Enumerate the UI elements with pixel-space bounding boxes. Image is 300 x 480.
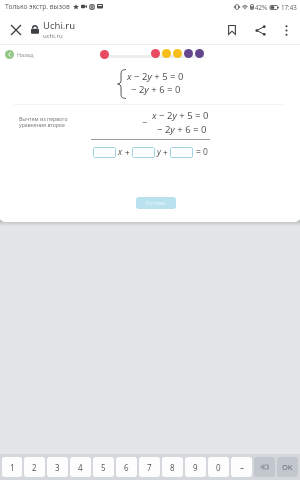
button[interactable]: Готово <box>136 197 176 209</box>
button[interactable]: 1 <box>2 457 22 477</box>
staticText: − 2y + 6 = 0 <box>131 83 181 96</box>
staticText: − 2y + 6 = 0 <box>157 123 207 136</box>
staticText: y <box>157 146 161 158</box>
button[interactable]: Backspace <box>254 457 275 477</box>
staticText: 5 <box>101 462 106 473</box>
staticText: 17:43 <box>281 3 297 11</box>
button[interactable]: 5 <box>93 457 114 477</box>
button[interactable]: Close <box>4 18 28 42</box>
staticText: Готово <box>146 199 166 207</box>
button[interactable]: 0 <box>208 457 229 477</box>
button[interactable]: – <box>231 457 252 477</box>
staticText: Назад <box>17 51 34 58</box>
staticText: Только экстр. вызов <box>5 2 70 11</box>
staticText: 8 <box>170 462 175 473</box>
staticText: 7 <box>147 462 152 473</box>
staticText: 2 <box>32 462 37 473</box>
staticText: 3 <box>55 462 60 473</box>
button[interactable]: Share <box>249 19 271 41</box>
staticText: + <box>125 147 130 158</box>
button[interactable]: 4 <box>70 457 91 477</box>
staticText: 9 <box>193 462 198 473</box>
button[interactable]: 3 <box>47 457 68 477</box>
staticText: Uchi.ru <box>43 19 76 32</box>
staticText: x <box>118 146 123 158</box>
staticText: 1 <box>10 462 15 473</box>
button[interactable]: Answer input <box>132 147 155 158</box>
staticText: 6 <box>124 462 129 473</box>
button[interactable]: 7 <box>139 457 160 477</box>
button[interactable]: Назад <box>5 50 34 59</box>
button[interactable]: Answer input <box>170 147 193 158</box>
staticText: − <box>142 116 148 128</box>
staticText: – <box>240 462 244 473</box>
button[interactable]: 6 <box>116 457 137 477</box>
staticText: 4 <box>78 462 83 473</box>
staticText: x − 2y + 5 = 0 <box>152 109 209 122</box>
staticText: + <box>163 147 168 158</box>
staticText: = 0 <box>196 146 208 158</box>
staticText: uchi.ru <box>43 32 63 40</box>
button[interactable]: 9 <box>185 457 206 477</box>
button[interactable]: Answer input <box>93 147 116 158</box>
staticText: Вычтем из первого уравнения второе <box>19 115 68 129</box>
button[interactable]: Uchi.ru <box>43 19 76 40</box>
button[interactable]: OK <box>277 457 298 477</box>
staticText: OK <box>282 462 293 472</box>
button[interactable]: More options <box>275 19 297 41</box>
staticText: x − 2y + 5 = 0 <box>127 70 184 83</box>
staticText: 42% <box>255 3 268 11</box>
button[interactable]: 2 <box>24 457 45 477</box>
staticText: 0 <box>216 462 221 473</box>
button[interactable]: Bookmark <box>221 19 243 41</box>
button[interactable]: 8 <box>162 457 183 477</box>
